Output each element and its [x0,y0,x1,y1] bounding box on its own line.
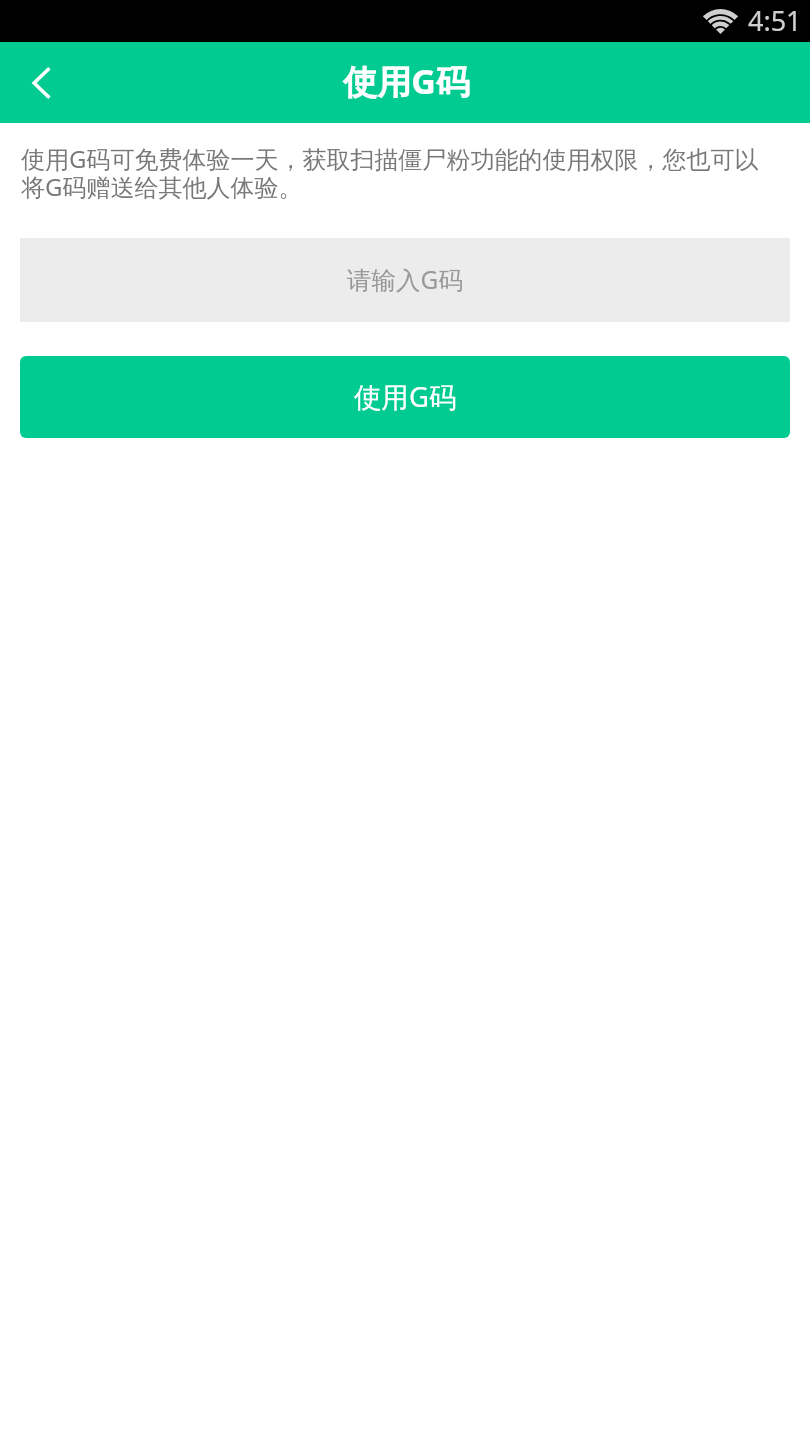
button[interactable]: 请输入G码 [20,238,790,322]
staticText: 使用G码 [354,378,457,416]
staticText: 4:51 [748,2,802,39]
staticText: 使用G码 [343,58,470,104]
staticText: 使用G码可免费体验一天，获取扫描僵尸粉功能的使用权限，您也可以将G码赠送给其他人… [21,147,774,203]
staticText: 请输入G码 [347,263,463,296]
other: Wi-Fi signal [704,9,737,34]
button[interactable]: Back [0,42,81,123]
button[interactable]: 使用G码 [20,356,790,438]
